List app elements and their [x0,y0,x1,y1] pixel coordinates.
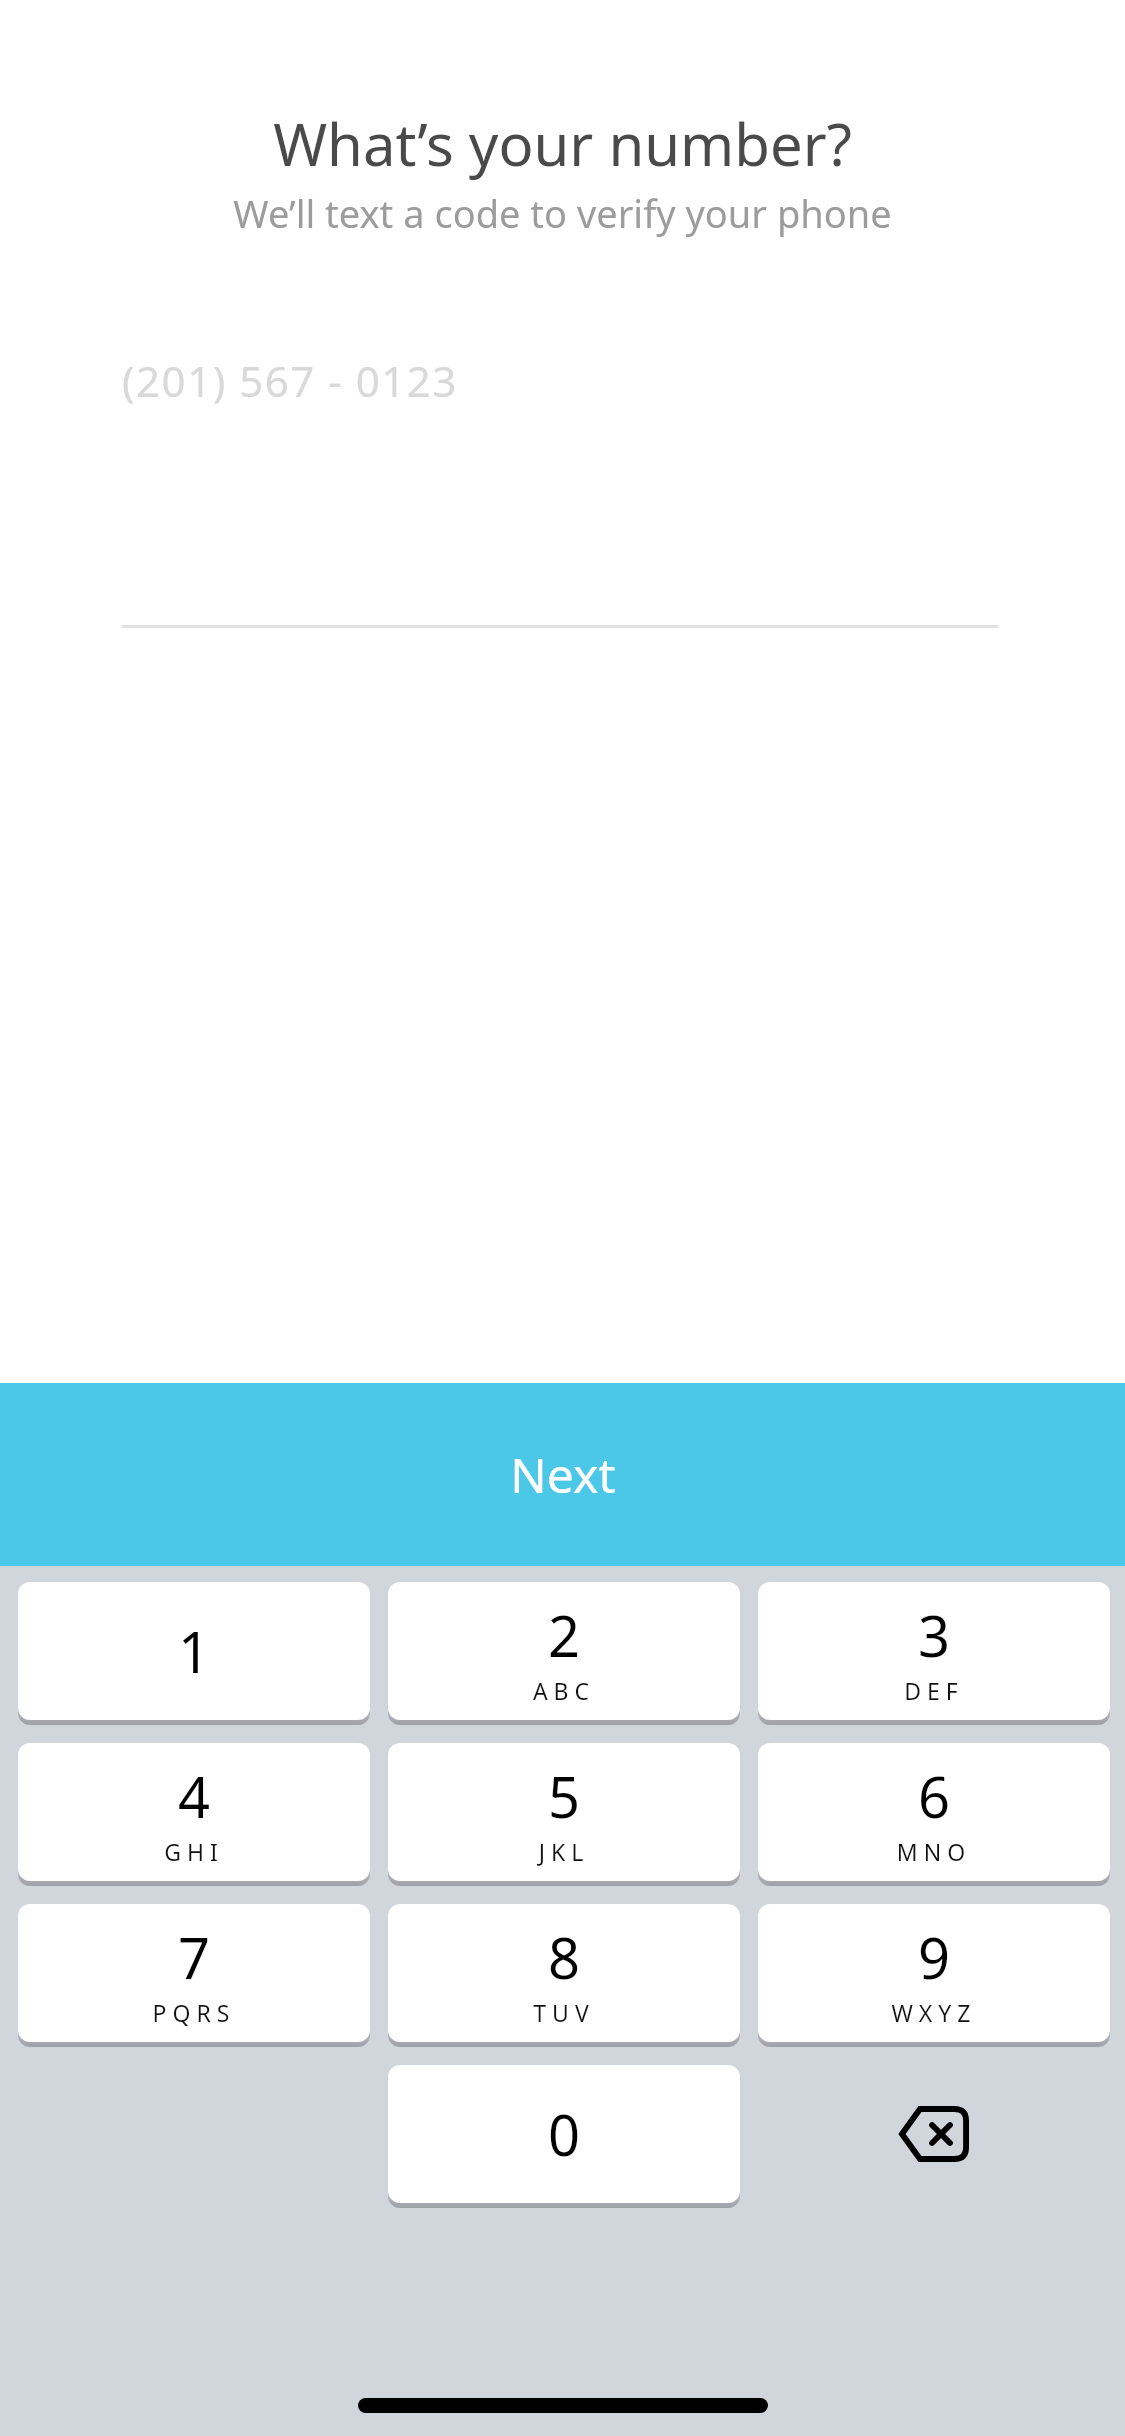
staticText: 2 [388,1597,740,1673]
staticText: 3 [758,1597,1110,1673]
button[interactable]: Backspace [758,2065,1110,2203]
staticText: Next [510,1442,616,1507]
staticText: GHI [18,1836,370,1867]
staticText: 1 [18,1613,370,1689]
button[interactable]: Next [0,1383,1125,1566]
staticText: DEF [758,1675,1110,1706]
button[interactable]: 4 [18,1743,370,1886]
staticText: 0 [388,2096,740,2172]
button[interactable]: 3 [758,1582,1110,1725]
staticText: JKL [388,1836,740,1867]
button[interactable]: 7 [18,1904,370,2047]
staticText: We’ll text a code to verify your phone [0,187,1125,239]
staticText: 4 [18,1758,370,1834]
staticText: TUV [388,1997,740,2028]
staticText: 6 [758,1758,1110,1834]
button[interactable]: 1 [18,1582,370,1725]
staticText: 7 [18,1919,370,1995]
button[interactable]: 0 [388,2065,740,2208]
staticText: (201) 567 - 0123 [122,352,458,409]
button[interactable]: 8 [388,1904,740,2047]
button[interactable]: 2 [388,1582,740,1725]
staticText: ABC [388,1675,740,1706]
staticText: PQRS [18,1997,370,2028]
button[interactable]: 5 [388,1743,740,1886]
staticText: 9 [758,1919,1110,1995]
staticText: 8 [388,1919,740,1995]
staticText: MNO [758,1836,1110,1867]
staticText: What’s your number? [0,104,1125,183]
button[interactable]: 9 [758,1904,1110,2047]
staticText: 5 [388,1758,740,1834]
button[interactable]: 6 [758,1743,1110,1886]
staticText: WXYZ [758,1997,1110,2028]
button[interactable]: (201) 567 - 0123 [122,330,998,430]
